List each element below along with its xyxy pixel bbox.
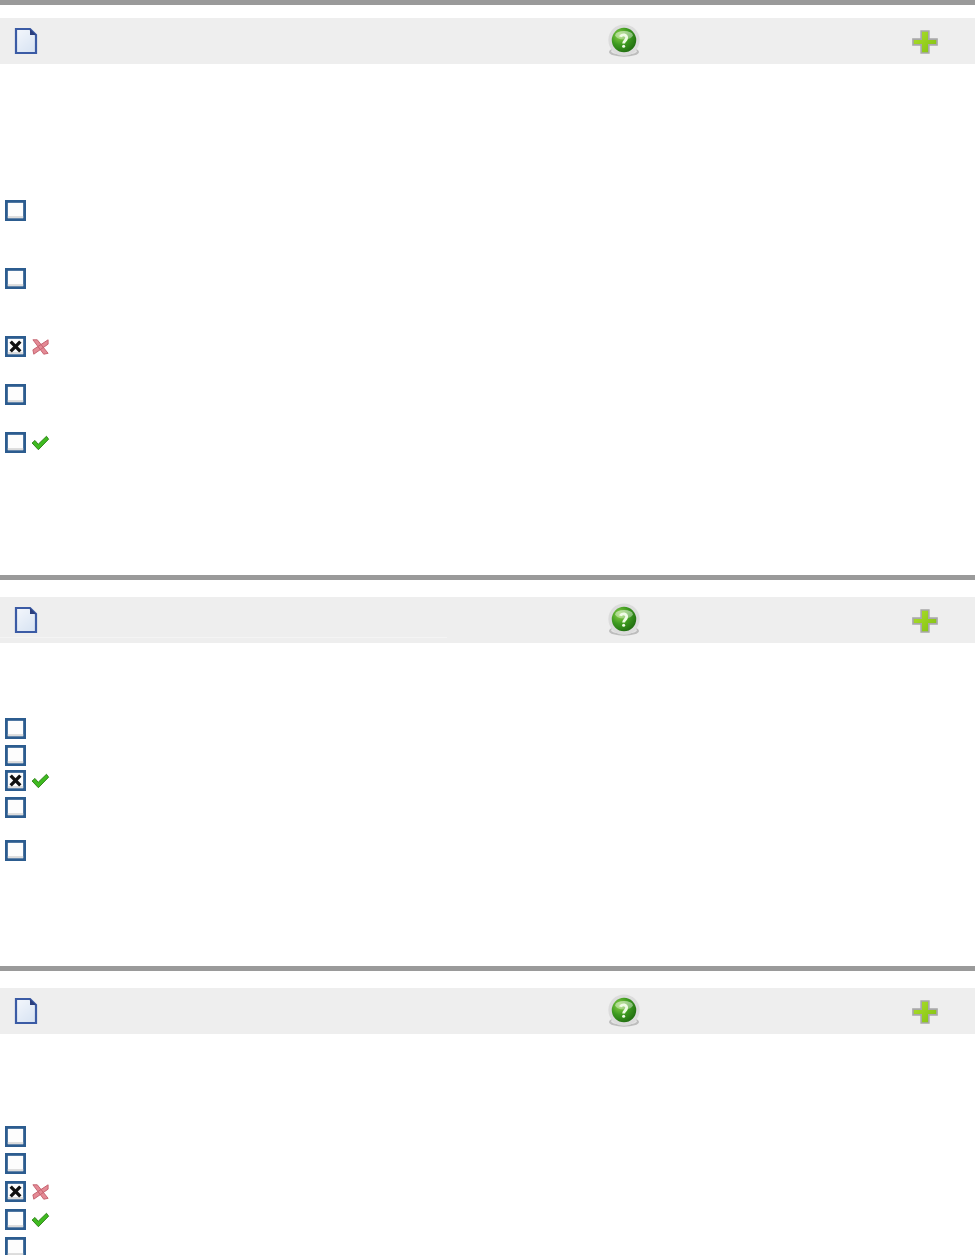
button[interactable]: Help xyxy=(607,26,641,58)
button[interactable]: Add xyxy=(913,1001,937,1023)
button[interactable]: Document xyxy=(16,29,36,53)
button[interactable] xyxy=(0,200,975,222)
button[interactable] xyxy=(0,384,975,406)
button[interactable] xyxy=(0,718,975,740)
button[interactable] xyxy=(0,1209,975,1231)
button[interactable]: Add xyxy=(913,610,937,632)
button[interactable]: Add xyxy=(913,31,937,53)
button[interactable] xyxy=(0,336,975,358)
button[interactable] xyxy=(0,840,975,862)
button[interactable] xyxy=(0,1181,975,1203)
button[interactable]: Help xyxy=(607,996,641,1028)
button[interactable] xyxy=(0,432,975,454)
button[interactable] xyxy=(0,797,975,819)
button[interactable] xyxy=(0,770,975,792)
button[interactable] xyxy=(0,268,975,290)
button[interactable] xyxy=(0,1126,975,1148)
button[interactable]: Document xyxy=(16,999,36,1023)
button[interactable] xyxy=(0,1153,975,1175)
button[interactable]: Help xyxy=(607,605,641,637)
button[interactable]: Document xyxy=(16,608,36,632)
button[interactable] xyxy=(0,745,975,767)
button[interactable] xyxy=(0,1237,975,1255)
